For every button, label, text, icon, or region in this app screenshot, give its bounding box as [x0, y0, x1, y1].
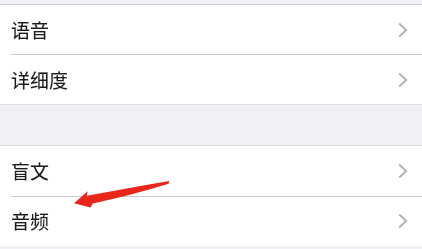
other: Open: [394, 19, 410, 41]
staticText: 语音: [11, 16, 50, 44]
other: Open: [394, 69, 410, 91]
button[interactable]: 盲文: [0, 146, 422, 196]
staticText: 详细度: [11, 66, 69, 94]
button[interactable]: 详细度: [0, 55, 422, 104]
button[interactable]: 音频: [0, 197, 422, 244]
staticText: 盲文: [11, 157, 50, 185]
other: Open: [394, 210, 410, 232]
other: Open: [394, 160, 410, 182]
staticText: 音频: [11, 207, 50, 235]
button[interactable]: 语音: [0, 5, 422, 54]
